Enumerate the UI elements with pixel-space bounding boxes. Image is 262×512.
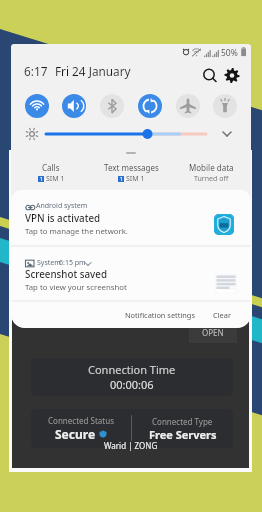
staticText: Secure <box>55 426 96 442</box>
staticText: 00:00:06 <box>110 377 154 392</box>
button[interactable]: Mobile data <box>171 162 251 192</box>
staticText: Screenshot saved <box>25 268 107 281</box>
staticText: Notification settings <box>125 310 195 320</box>
button[interactable]: Bluetooth <box>100 94 124 118</box>
button[interactable]: System <box>11 247 251 300</box>
staticText: Fri 24 January <box>55 63 131 79</box>
button[interactable]: Auto sync <box>138 94 162 118</box>
staticText: Connection Time <box>88 362 176 377</box>
staticText: 1 <box>40 176 43 182</box>
staticText: 6:15 pm <box>59 258 86 268</box>
button[interactable]: Sound <box>62 94 86 118</box>
button[interactable]: Text messages <box>91 162 171 192</box>
staticText: Tap to view your screenshot <box>25 282 127 293</box>
staticText: SIM 1 <box>126 174 145 184</box>
button[interactable]: Flight mode <box>176 94 200 118</box>
button[interactable]: Clear <box>209 304 235 326</box>
button[interactable]: Android system <box>11 190 251 245</box>
staticText: System <box>37 258 61 268</box>
staticText: Clear <box>213 310 231 320</box>
staticText: Connected Status <box>48 415 114 426</box>
staticText: Free Servers <box>149 427 217 442</box>
staticText: Warid | ZONG <box>104 440 158 451</box>
staticText: Mobile data <box>189 162 234 173</box>
button[interactable]: Calls <box>11 162 91 192</box>
staticText: Connected Type <box>152 416 213 427</box>
staticText: Text messages <box>104 162 159 173</box>
staticText: 1 <box>120 176 123 182</box>
staticText: Android system <box>36 201 88 211</box>
staticText: 50% <box>221 47 238 59</box>
staticText: SIM 1 <box>46 174 65 184</box>
staticText: Calls <box>42 162 60 173</box>
button[interactable]: Search <box>200 66 220 86</box>
button[interactable]: Wi-Fi <box>25 94 49 118</box>
staticText: OPEN <box>202 327 224 338</box>
staticText: VPN is activated <box>25 212 101 225</box>
staticText: Turned off <box>194 174 229 184</box>
button[interactable]: OPEN <box>189 322 237 343</box>
button[interactable]: Settings <box>222 66 242 86</box>
button[interactable]: Flashlight <box>213 94 237 118</box>
staticText: 6:17 <box>24 63 48 79</box>
staticText: Tap to manage the network. <box>25 226 128 237</box>
button[interactable]: Notification settings <box>121 304 199 326</box>
